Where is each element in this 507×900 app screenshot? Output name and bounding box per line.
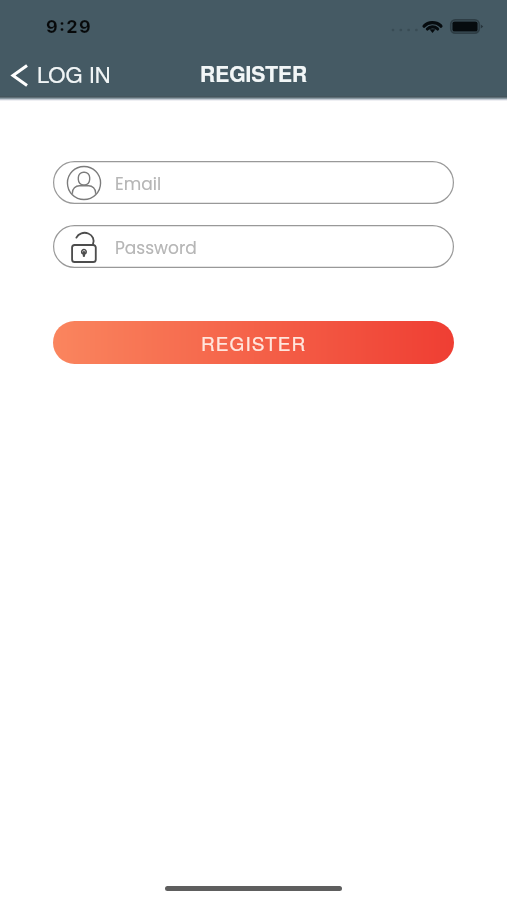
button[interactable]: Back (0, 53, 125, 97)
button[interactable]: Email (53, 161, 454, 204)
staticText: 9:29 (46, 16, 92, 38)
other: Back (12, 64, 28, 87)
staticText: Password (115, 236, 197, 260)
staticText: Email (115, 172, 162, 196)
button[interactable]: REGISTER (53, 321, 454, 364)
staticText: REGISTER (201, 329, 307, 356)
staticText: LOG IN (37, 58, 111, 90)
staticText: REGISTER (200, 58, 308, 88)
button[interactable]: Password (53, 225, 454, 268)
